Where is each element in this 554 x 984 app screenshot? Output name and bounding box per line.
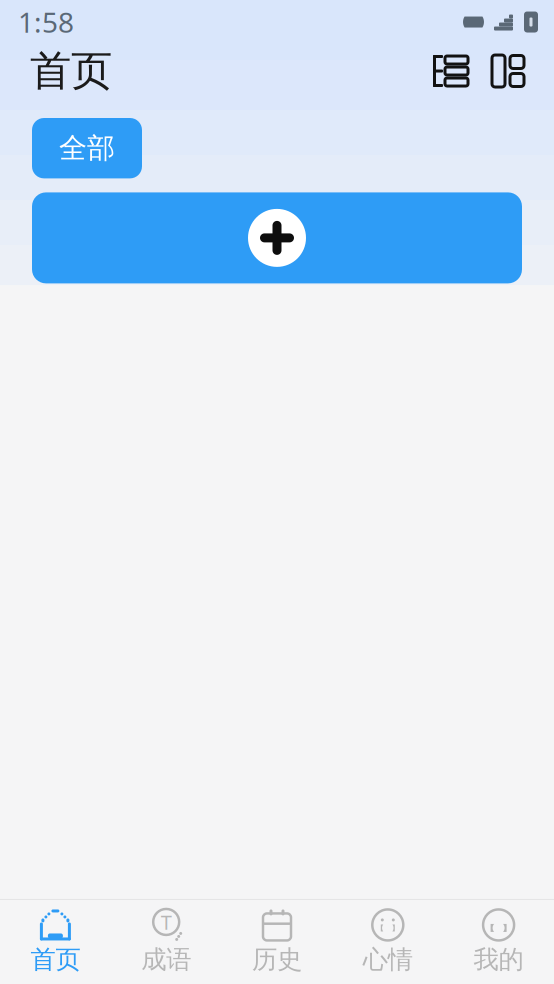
staticText: 心情 bbox=[363, 944, 413, 975]
staticText: 首页 bbox=[30, 46, 112, 96]
button[interactable]: 全部 bbox=[32, 118, 142, 178]
button[interactable]: 我的 bbox=[443, 900, 554, 981]
staticText: 历史 bbox=[252, 944, 302, 975]
button[interactable]: 添加 bbox=[0, 192, 554, 283]
staticText: T bbox=[161, 909, 172, 935]
button[interactable]: 网格视图 bbox=[484, 47, 532, 95]
button[interactable]: 列表视图 bbox=[422, 47, 474, 95]
button[interactable]: 首页 bbox=[0, 900, 111, 981]
staticText: 首页 bbox=[30, 944, 80, 975]
button[interactable]: 心情 bbox=[332, 900, 443, 981]
button[interactable]: T bbox=[111, 900, 222, 981]
button[interactable]: 历史 bbox=[222, 900, 332, 981]
staticText: 1:58 bbox=[18, 3, 74, 41]
staticText: 全部 bbox=[59, 131, 115, 165]
staticText: 成语 bbox=[141, 944, 191, 975]
staticText: 我的 bbox=[474, 944, 524, 975]
